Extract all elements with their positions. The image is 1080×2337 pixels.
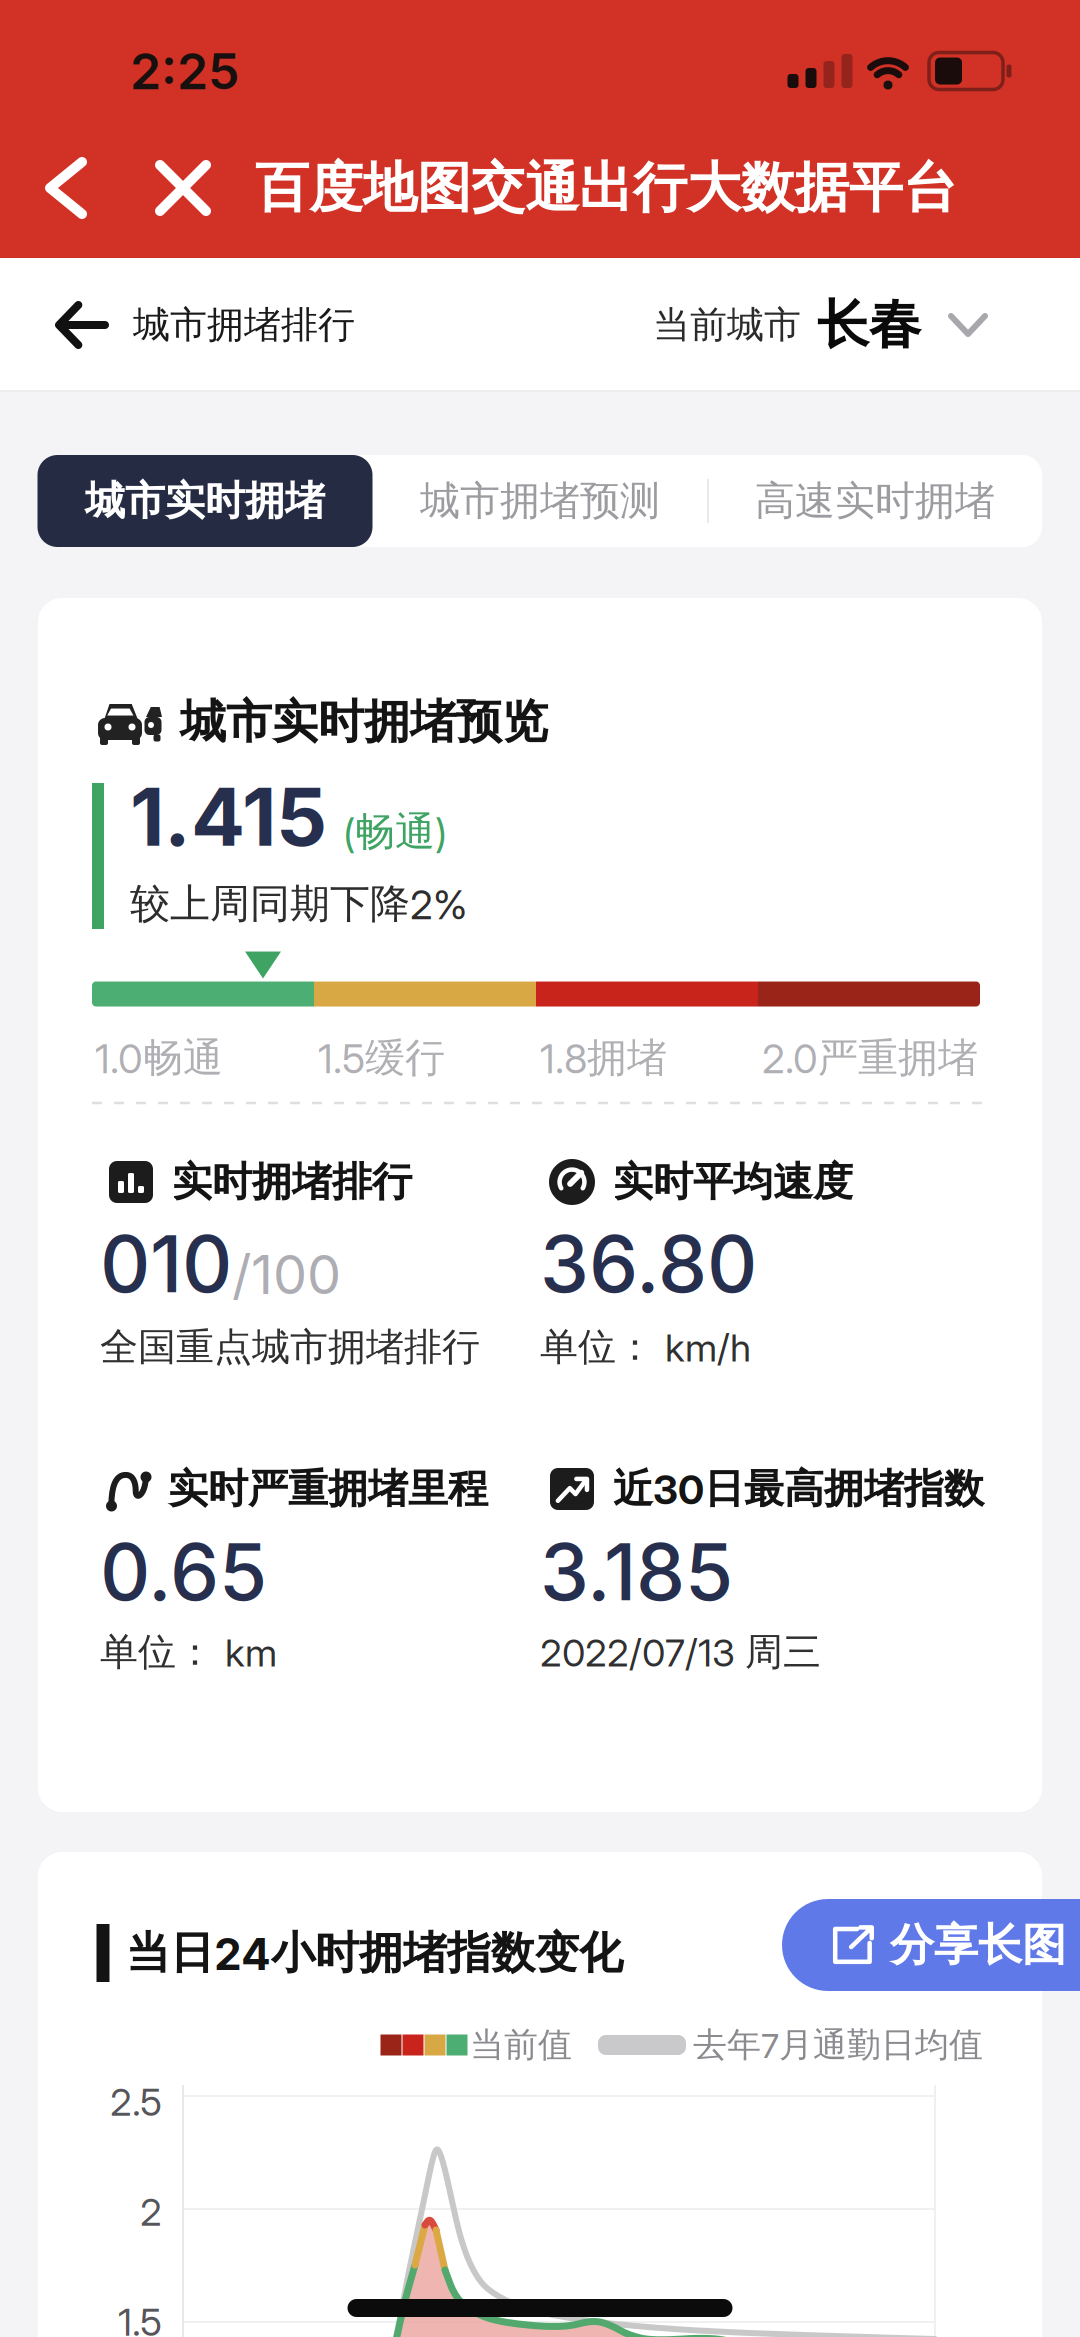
staticText: 2 bbox=[140, 2189, 162, 2235]
staticText: 单位： km bbox=[100, 1628, 277, 1676]
staticText: 2022/07/13 周三 bbox=[540, 1628, 821, 1676]
staticText: 实时平均速度 bbox=[613, 1157, 853, 1207]
staticText: 当日24小时拥堵指数变化 bbox=[126, 1925, 623, 1981]
staticText: 36.80 bbox=[540, 1217, 757, 1311]
button[interactable]: 城市拥堵预测 bbox=[375, 455, 705, 547]
button[interactable]: 关闭 bbox=[150, 155, 216, 221]
button[interactable]: 返回 bbox=[40, 152, 92, 224]
staticText: 分享长图 bbox=[890, 1917, 1066, 1973]
staticText: 城市拥堵排行 bbox=[133, 302, 355, 348]
staticText: 当前城市 bbox=[653, 302, 801, 348]
staticText: 全国重点城市拥堵排行 bbox=[100, 1323, 480, 1371]
staticText: 去年7月通勤日均值 bbox=[693, 2024, 983, 2066]
staticText: (畅通) bbox=[343, 807, 447, 857]
staticText: 长春 bbox=[817, 292, 921, 358]
staticText: /100 bbox=[232, 1242, 341, 1307]
staticText: 010 bbox=[100, 1217, 232, 1311]
staticText: 高速实时拥堵 bbox=[755, 476, 995, 526]
staticText: 3.185 bbox=[540, 1525, 733, 1619]
staticText: 2.0严重拥堵 bbox=[762, 1033, 978, 1083]
staticText: 城市实时拥堵 bbox=[85, 476, 325, 526]
staticText: 较上周同期下降2% bbox=[130, 879, 467, 929]
staticText: 百度地图交通出行大数据平台 bbox=[255, 154, 957, 222]
staticText: 1.5 bbox=[118, 2299, 162, 2337]
staticText: 2:25 bbox=[130, 41, 239, 101]
button[interactable]: 高速实时拥堵 bbox=[710, 455, 1040, 547]
button[interactable]: 城市实时拥堵 bbox=[37, 455, 372, 547]
staticText: 0.65 bbox=[100, 1525, 267, 1619]
staticText: 单位： km/h bbox=[540, 1323, 751, 1371]
staticText: 1.415 bbox=[130, 768, 327, 865]
staticText: 实时拥堵排行 bbox=[172, 1157, 412, 1207]
button[interactable]: 分享长图 bbox=[782, 1899, 1080, 1991]
button[interactable]: 当前城市 bbox=[653, 292, 985, 358]
staticText: 当前值 bbox=[470, 2024, 572, 2066]
staticText: 2.5 bbox=[110, 2079, 162, 2125]
staticText: 实时严重拥堵里程 bbox=[168, 1464, 488, 1514]
staticText: 城市实时拥堵预览 bbox=[180, 693, 548, 751]
staticText: 1.8拥堵 bbox=[540, 1033, 667, 1083]
staticText: 城市拥堵预测 bbox=[420, 476, 660, 526]
staticText: 近30日最高拥堵指数 bbox=[613, 1464, 984, 1514]
staticText: 1.5缓行 bbox=[318, 1033, 445, 1083]
staticText: 1.0畅通 bbox=[95, 1033, 223, 1083]
button[interactable]: 返回 城市拥堵排行 bbox=[59, 302, 355, 348]
